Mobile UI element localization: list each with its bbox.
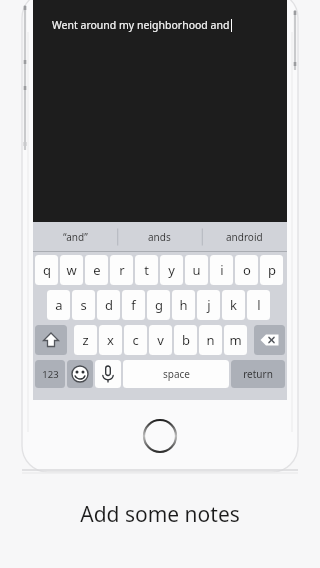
button[interactable]: q	[35, 255, 58, 285]
staticText: i	[220, 261, 224, 279]
staticText: t	[144, 261, 149, 279]
button[interactable]: b	[174, 325, 197, 355]
staticText: v	[157, 331, 164, 349]
staticText: u	[192, 261, 201, 279]
staticText: c	[132, 331, 139, 349]
button[interactable]: 123	[35, 360, 65, 388]
button[interactable]: o	[235, 255, 258, 285]
button[interactable]: l	[247, 290, 270, 320]
button[interactable]: d	[97, 290, 120, 320]
button[interactable]: t	[135, 255, 158, 285]
staticText: n	[206, 331, 215, 349]
button[interactable]: z	[74, 325, 97, 355]
staticText: b	[182, 331, 190, 349]
button[interactable]: Home	[141, 417, 179, 455]
staticText: h	[179, 296, 188, 314]
button[interactable]: h	[172, 290, 195, 320]
button[interactable]: android	[202, 222, 287, 252]
staticText: r	[119, 261, 125, 279]
button[interactable]: x	[99, 325, 122, 355]
button[interactable]: Dictate	[95, 360, 121, 388]
staticText: g	[155, 296, 163, 314]
button[interactable]: u	[185, 255, 208, 285]
button[interactable]: w	[60, 255, 83, 285]
staticText: m	[229, 331, 242, 349]
staticText: o	[243, 261, 251, 279]
button[interactable]: Shift	[35, 325, 67, 355]
button[interactable]: c	[124, 325, 147, 355]
staticText: y	[168, 261, 175, 279]
staticText: 123	[42, 368, 59, 381]
button[interactable]: y	[160, 255, 183, 285]
button[interactable]: n	[199, 325, 222, 355]
staticText: Went around my neighborhood and	[52, 18, 230, 32]
staticText: p	[268, 261, 276, 279]
button[interactable]: j	[197, 290, 220, 320]
staticText: e	[93, 261, 101, 279]
button[interactable]: f	[122, 290, 145, 320]
staticText: l	[257, 296, 261, 314]
staticText: return	[243, 367, 273, 381]
button[interactable]: Backspace	[254, 325, 285, 355]
staticText: s	[80, 296, 87, 314]
button[interactable]: e	[85, 255, 108, 285]
button[interactable]: v	[149, 325, 172, 355]
button[interactable]: m	[224, 325, 247, 355]
staticText: x	[107, 331, 114, 349]
staticText: d	[105, 296, 113, 314]
staticText: Add some notes	[80, 500, 240, 529]
staticText: q	[43, 261, 51, 279]
button[interactable]: return	[231, 360, 285, 388]
staticText: “and”	[63, 230, 88, 244]
button[interactable]: k	[222, 290, 245, 320]
staticText: android	[226, 230, 263, 244]
button[interactable]: s	[72, 290, 95, 320]
staticText: j	[207, 296, 211, 314]
button[interactable]: “and”	[33, 222, 117, 252]
staticText: space	[163, 367, 190, 381]
button[interactable]: Emoji	[67, 360, 93, 388]
button[interactable]: g	[147, 290, 170, 320]
staticText: z	[82, 331, 89, 349]
button[interactable]: r	[110, 255, 133, 285]
button[interactable]: p	[260, 255, 283, 285]
staticText: a	[55, 296, 63, 314]
staticText: k	[230, 296, 237, 314]
staticText: w	[66, 261, 77, 279]
button[interactable]: ands	[117, 222, 202, 252]
staticText: f	[131, 296, 136, 314]
staticText: ands	[148, 230, 171, 244]
button[interactable]: space	[123, 360, 229, 388]
button[interactable]: i	[210, 255, 233, 285]
button[interactable]: a	[47, 290, 70, 320]
